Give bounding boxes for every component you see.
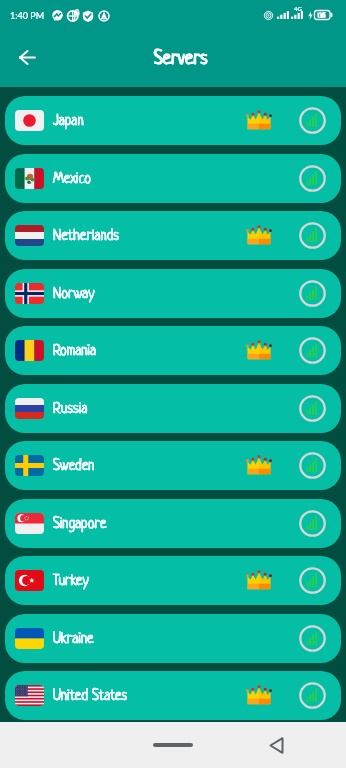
staticText: Romania [53, 343, 97, 359]
staticText: Sweden [53, 458, 95, 474]
staticText: Japan [53, 113, 84, 129]
button[interactable]: Singapore [5, 499, 341, 548]
staticText: Norway [53, 286, 95, 302]
staticText: United States [53, 688, 128, 704]
button[interactable]: Back [259, 728, 293, 762]
staticText: Romania [53, 343, 97, 359]
staticText: Norway [53, 286, 95, 302]
staticText: 15 [318, 11, 327, 19]
staticText: Mexico [53, 171, 91, 187]
button[interactable]: Sweden [5, 441, 341, 490]
staticText: Mexico [53, 171, 91, 187]
button[interactable]: Norway [5, 269, 341, 318]
button[interactable]: Mexico [5, 154, 341, 203]
button[interactable]: United States [5, 671, 341, 720]
staticText: Ukraine [53, 631, 94, 647]
staticText: 4G [294, 5, 302, 12]
staticText: Turkey [53, 573, 89, 589]
staticText: Japan [53, 113, 84, 129]
button[interactable]: Russia [5, 384, 341, 433]
staticText: Netherlands [53, 228, 119, 244]
button[interactable]: Back [4, 34, 50, 80]
staticText: Singapore [53, 516, 107, 532]
button[interactable]: Ukraine [5, 614, 341, 663]
staticText: United States [53, 688, 128, 704]
button[interactable]: Romania [5, 326, 341, 375]
staticText: Sweden [53, 458, 95, 474]
button[interactable]: Home [139, 733, 207, 757]
button[interactable]: Turkey [5, 556, 341, 605]
staticText: Ukraine [53, 631, 94, 647]
button[interactable]: Netherlands [5, 211, 341, 260]
staticText: 1:40 PM [10, 10, 45, 21]
staticText: Russia [53, 401, 88, 417]
staticText: Servers [154, 49, 208, 69]
staticText: Singapore [53, 516, 107, 532]
staticText: Russia [53, 401, 88, 417]
staticText: Turkey [53, 573, 89, 589]
button[interactable]: Japan [5, 96, 341, 145]
staticText: Netherlands [53, 228, 119, 244]
staticText: Servers [154, 49, 208, 69]
